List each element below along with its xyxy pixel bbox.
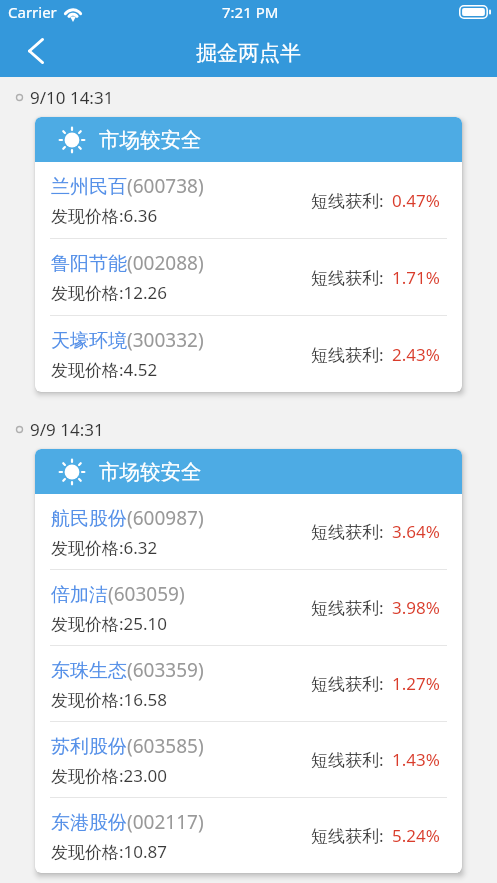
staticText: 1.27% xyxy=(392,672,440,695)
staticText: 倍加洁 xyxy=(51,583,108,607)
staticText: 短线获利: xyxy=(311,596,384,619)
staticText: (603585) xyxy=(127,733,204,759)
button[interactable]: 航民股份 xyxy=(35,494,462,569)
button[interactable]: 鲁阳节能 xyxy=(35,239,462,315)
staticText: 发现价格:12.26 xyxy=(51,281,168,304)
button[interactable]: Back xyxy=(0,28,71,77)
staticText: 短线获利: xyxy=(311,343,384,366)
button[interactable]: 苏利股份 xyxy=(35,722,462,797)
staticText: (603059) xyxy=(108,581,185,607)
staticText: 发现价格:25.10 xyxy=(51,612,168,635)
staticText: 短线获利: xyxy=(311,748,384,771)
staticText: 1.71% xyxy=(392,266,440,289)
staticText: 0.47% xyxy=(392,189,440,212)
staticText: Carrier xyxy=(8,2,57,22)
staticText: 航民股份 xyxy=(51,507,127,531)
staticText: 7:21 PM xyxy=(222,2,279,22)
staticText: 短线获利: xyxy=(311,189,384,212)
staticText: (002088) xyxy=(127,250,204,276)
staticText: 天壕环境 xyxy=(51,329,127,353)
staticText: 短线获利: xyxy=(311,520,384,543)
staticText: 2.43% xyxy=(392,343,440,366)
staticText: 东珠生态 xyxy=(51,659,127,683)
button[interactable]: 东珠生态 xyxy=(35,646,462,721)
staticText: 东港股份 xyxy=(51,811,127,835)
staticText: 掘金两点半 xyxy=(196,40,301,66)
button[interactable]: 兰州民百 xyxy=(35,162,462,238)
staticText: 短线获利: xyxy=(311,824,384,847)
button[interactable]: 东港股份 xyxy=(35,798,462,873)
staticText: 发现价格:6.32 xyxy=(51,536,158,559)
staticText: 5.24% xyxy=(392,824,440,847)
staticText: 1.43% xyxy=(392,748,440,771)
staticText: 发现价格:10.87 xyxy=(51,840,168,863)
staticText: (300332) xyxy=(127,327,204,353)
staticText: 鲁阳节能 xyxy=(51,252,127,276)
staticText: (600987) xyxy=(127,505,204,531)
staticText: 发现价格:6.36 xyxy=(51,204,158,227)
staticText: 市场较安全 xyxy=(99,127,202,153)
staticText: 3.64% xyxy=(392,520,440,543)
staticText: 短线获利: xyxy=(311,672,384,695)
staticText: 兰州民百 xyxy=(51,175,127,199)
staticText: 市场较安全 xyxy=(99,459,202,485)
staticText: (002117) xyxy=(127,809,204,835)
staticText: (600738) xyxy=(127,173,204,199)
staticText: 苏利股份 xyxy=(51,735,127,759)
button[interactable]: 倍加洁 xyxy=(35,570,462,645)
staticText: 发现价格:23.00 xyxy=(51,764,168,787)
staticText: 9/10 14:31 xyxy=(30,86,114,109)
staticText: 9/9 14:31 xyxy=(30,418,104,441)
staticText: 短线获利: xyxy=(311,266,384,289)
staticText: 3.98% xyxy=(392,596,440,619)
button[interactable]: 天壕环境 xyxy=(35,316,462,392)
staticText: 发现价格:4.52 xyxy=(51,358,158,381)
staticText: 发现价格:16.58 xyxy=(51,688,168,711)
staticText: (603359) xyxy=(127,657,204,683)
